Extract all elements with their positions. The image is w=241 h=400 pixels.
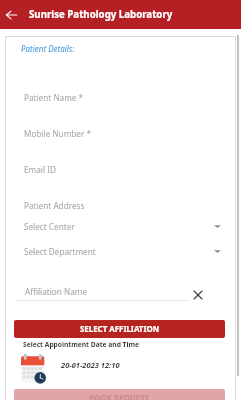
staticText: 20-01-2023 12:10 xyxy=(61,360,120,370)
staticText: Sunrise Pathology Laboratory xyxy=(29,8,173,21)
button[interactable]: Patient Name * xyxy=(5,89,236,105)
button[interactable]: Mobile Number * xyxy=(5,125,236,141)
staticText: Patient Name * xyxy=(24,92,84,103)
staticText: Select Department xyxy=(24,246,96,257)
button[interactable]: Email ID xyxy=(5,161,236,177)
button[interactable]: Back xyxy=(5,9,17,21)
button[interactable]: Select Center xyxy=(5,218,236,234)
staticText: Mobile Number * xyxy=(24,128,91,139)
staticText: BOOK REQUEST xyxy=(89,393,150,400)
staticText: Affiliation Name xyxy=(25,286,88,297)
button[interactable]: Patient Address xyxy=(5,197,236,213)
button[interactable]: SELECT AFFILIATION xyxy=(14,320,225,338)
button[interactable]: BOOK REQUEST xyxy=(14,389,225,400)
staticText: SELECT AFFILIATION xyxy=(80,324,160,335)
button[interactable]: Select Department xyxy=(5,243,236,259)
button[interactable]: Pick appointment date and time xyxy=(21,354,143,384)
button[interactable]: Clear affiliation xyxy=(189,286,207,304)
staticText: Select Center xyxy=(24,221,75,232)
staticText: Patient Details: xyxy=(21,43,75,54)
staticText: Email ID xyxy=(24,164,56,175)
staticText: Select Appointment Date and Time xyxy=(23,340,139,349)
button[interactable]: Affiliation Name xyxy=(5,283,236,299)
staticText: Patient Address xyxy=(24,200,85,211)
